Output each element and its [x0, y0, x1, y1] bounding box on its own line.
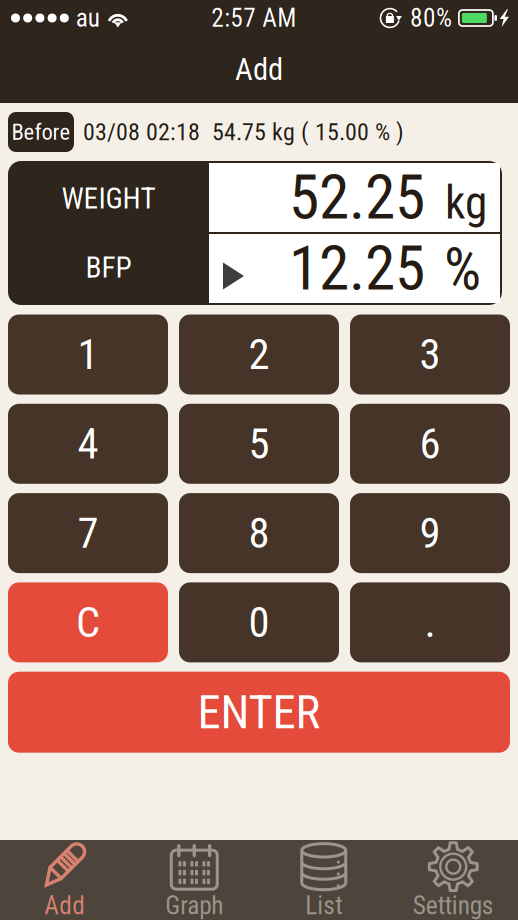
staticText: % — [444, 235, 481, 304]
button[interactable]: 7 — [8, 493, 168, 573]
button[interactable]: Graph — [129, 840, 259, 920]
staticText: BFP — [85, 250, 131, 285]
staticText: 03/08 02:18 54.75 kg ( 15.00 % ) — [83, 118, 404, 146]
button[interactable]: 9 — [350, 493, 510, 573]
staticText: List — [305, 891, 342, 920]
button[interactable]: Before — [8, 112, 74, 152]
staticText: Before — [11, 119, 70, 145]
staticText: au — [76, 3, 100, 33]
staticText: WEIGHT — [61, 181, 155, 216]
button[interactable]: 6 — [350, 404, 510, 484]
staticText: 4 — [77, 419, 98, 469]
button[interactable]: Add — [0, 840, 129, 920]
button[interactable]: 5 — [179, 404, 339, 484]
button[interactable]: 0 — [179, 582, 339, 662]
button[interactable]: . — [350, 582, 510, 662]
staticText: 2 — [248, 329, 269, 379]
button[interactable]: 2 — [179, 314, 339, 394]
staticText: 80% — [410, 3, 452, 33]
staticText: 0 — [248, 597, 269, 647]
staticText: 6 — [419, 419, 440, 469]
staticText: 52.25 — [289, 162, 425, 233]
staticText: 3 — [419, 329, 440, 379]
button[interactable]: ENTER — [8, 672, 510, 753]
button[interactable]: Settings — [388, 840, 518, 920]
staticText: C — [76, 597, 100, 647]
staticText: Settings — [413, 891, 494, 920]
button[interactable]: C — [8, 582, 168, 662]
button[interactable]: 1 — [8, 314, 168, 394]
staticText: ENTER — [197, 685, 320, 740]
button[interactable]: 4 — [8, 404, 168, 484]
staticText: Graph — [165, 891, 223, 920]
staticText: Add — [44, 891, 85, 920]
staticText: 9 — [419, 508, 440, 558]
staticText: Add — [235, 51, 283, 87]
staticText: 8 — [248, 508, 269, 558]
button[interactable]: 8 — [179, 493, 339, 573]
staticText: . — [424, 597, 435, 647]
staticText: 7 — [77, 508, 98, 558]
staticText: 1 — [77, 329, 98, 379]
staticText: 12.25 — [289, 233, 425, 304]
button[interactable]: 3 — [350, 314, 510, 394]
staticText: 5 — [248, 419, 269, 469]
staticText: kg — [445, 176, 487, 229]
staticText: 2:57 AM — [211, 3, 296, 33]
button[interactable]: List — [259, 840, 388, 920]
